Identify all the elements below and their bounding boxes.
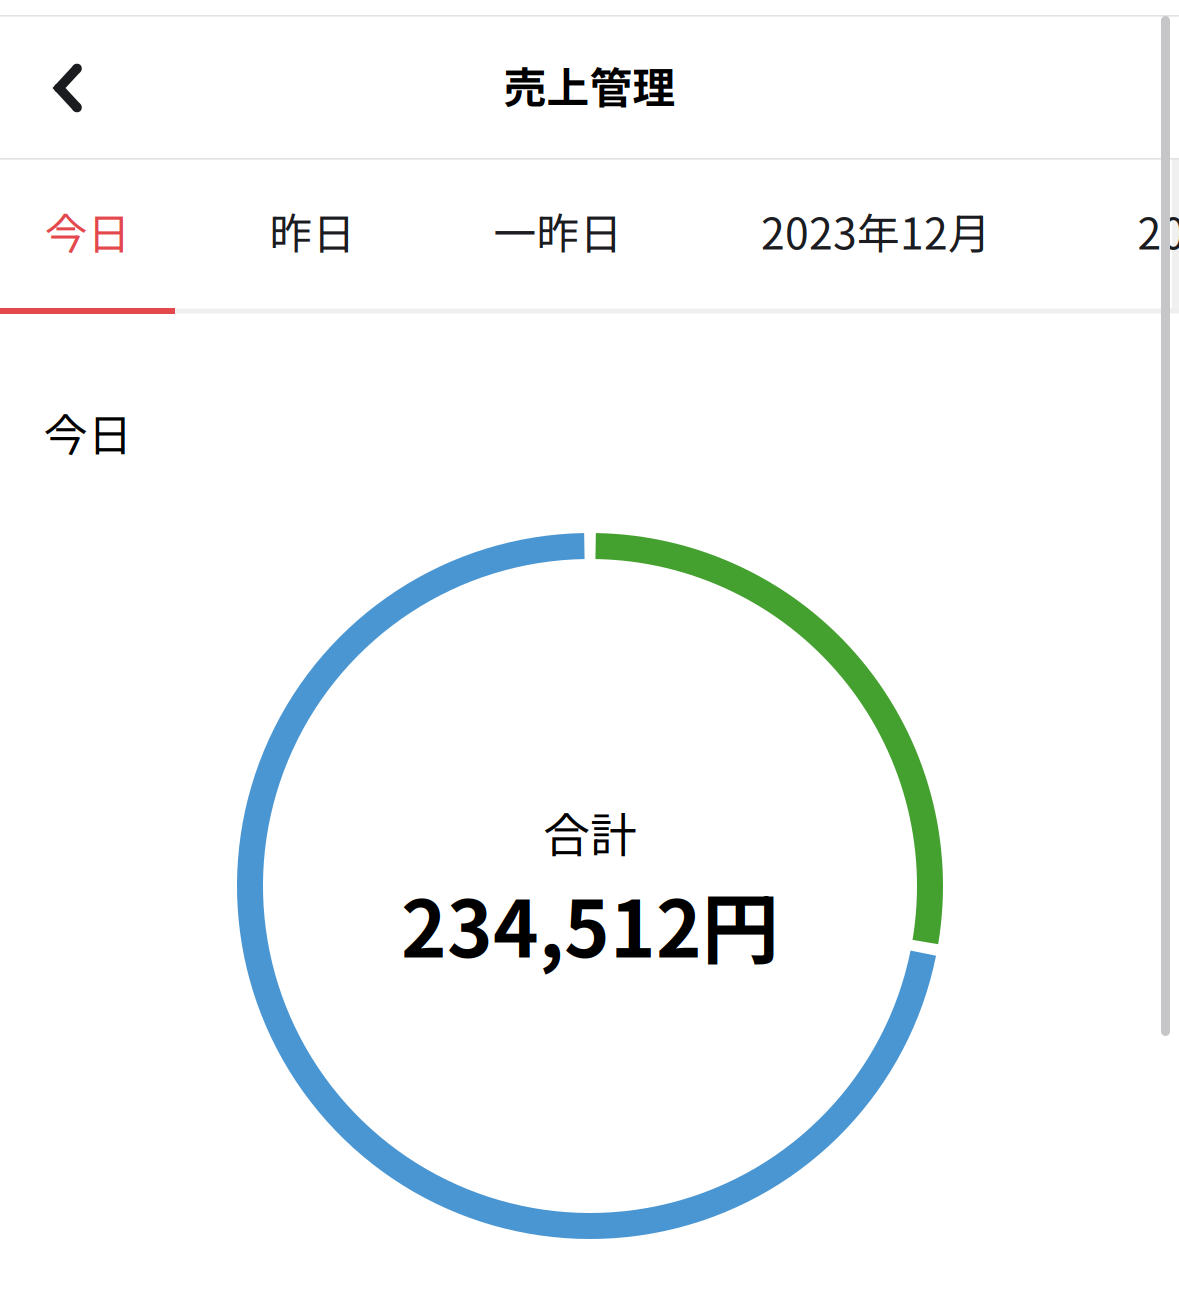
- button[interactable]: Back: [12, 40, 124, 136]
- button[interactable]: 昨日: [206, 157, 419, 305]
- button[interactable]: 一昨日: [435, 157, 681, 305]
- button[interactable]: 2023年11月: [1062, 157, 1179, 305]
- staticText: 合計: [543, 798, 637, 866]
- staticText: 今日: [44, 400, 132, 464]
- button[interactable]: 今日: [0, 157, 175, 305]
- staticText: 売上管理: [503, 54, 675, 116]
- button[interactable]: 2023年12月: [690, 157, 1062, 305]
- staticText: 234,512円: [401, 868, 779, 980]
- staticText: 2023年12月: [761, 200, 991, 262]
- staticText: 今日: [44, 200, 130, 262]
- staticText: 一昨日: [493, 200, 622, 262]
- staticText: 昨日: [269, 200, 355, 262]
- staticText: 2023年11月: [1137, 200, 1179, 262]
